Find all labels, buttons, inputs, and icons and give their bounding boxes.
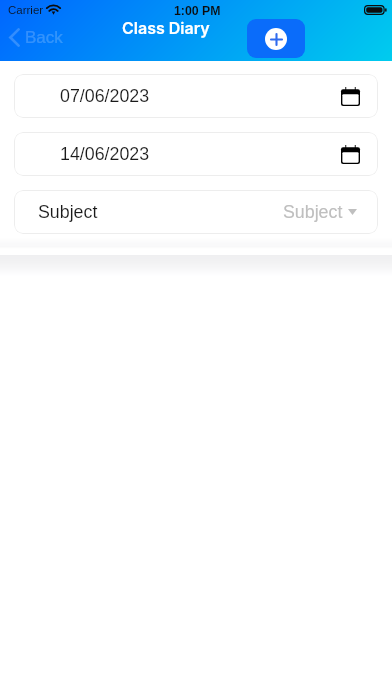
staticText: 07/06/2023 [60,86,150,106]
button[interactable]: Add [247,19,305,58]
staticText: Subject [283,202,343,222]
staticText: Carrier [8,4,44,17]
button[interactable]: Back [4,26,69,49]
button[interactable]: Pick date [341,145,360,164]
staticText: 1:00 PM [174,4,221,18]
staticText: Subject [38,202,98,222]
button[interactable]: 14/06/2023 [14,132,378,176]
staticText: 14/06/2023 [60,144,150,164]
button[interactable]: 07/06/2023 [14,74,378,118]
button[interactable]: Pick date [341,87,360,106]
button[interactable]: Subject [14,190,378,234]
staticText: Class Diary [122,18,210,37]
staticText: Back [25,28,63,47]
